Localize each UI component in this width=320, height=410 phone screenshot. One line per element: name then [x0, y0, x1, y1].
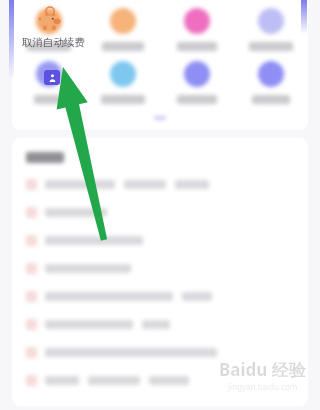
- button[interactable]: 取消自动续费: [16, 36, 90, 49]
- button[interactable]: [86, 61, 160, 104]
- button[interactable]: [86, 8, 160, 51]
- button[interactable]: [234, 8, 308, 51]
- staticText: Baidu 经验: [219, 358, 306, 381]
- button[interactable]: [160, 8, 234, 51]
- button[interactable]: 会员中心: [44, 70, 60, 85]
- staticText: 取消自动续费: [22, 36, 85, 49]
- button[interactable]: [26, 347, 308, 358]
- button[interactable]: [26, 319, 308, 330]
- button[interactable]: [26, 263, 308, 274]
- button[interactable]: [12, 8, 86, 51]
- button[interactable]: [12, 61, 86, 104]
- button[interactable]: [26, 291, 308, 302]
- button[interactable]: [26, 235, 308, 246]
- staticText: jingyan.baidu.com: [228, 381, 298, 392]
- button[interactable]: [160, 61, 234, 104]
- button[interactable]: [26, 207, 308, 218]
- button[interactable]: [26, 375, 308, 386]
- button[interactable]: [26, 179, 308, 190]
- button[interactable]: [234, 61, 308, 104]
